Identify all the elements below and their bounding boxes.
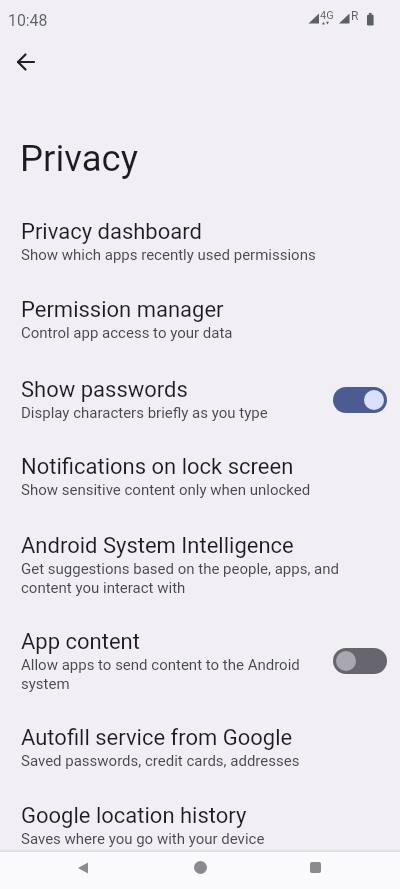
staticText: Google location history <box>21 803 247 829</box>
staticText: Privacy dashboard <box>21 219 202 245</box>
staticText: R <box>351 9 359 23</box>
button[interactable] <box>0 852 134 889</box>
staticText: Permission manager <box>21 297 224 323</box>
staticText: Autofill service from Google <box>21 725 293 751</box>
staticText: Saved passwords, credit cards, addresses <box>21 752 377 770</box>
button[interactable]: Autofill service from Google <box>0 725 400 770</box>
staticText: App content <box>21 629 140 655</box>
staticText: 10:48 <box>8 11 48 30</box>
staticText: Control app access to your data <box>21 324 377 342</box>
staticText: Notifications on lock screen <box>21 454 294 480</box>
button[interactable] <box>333 387 387 413</box>
button[interactable]: Android System Intelligence <box>0 533 400 596</box>
button[interactable]: Permission manager <box>0 297 400 342</box>
button[interactable]: Notifications on lock screen <box>0 454 400 499</box>
staticText: Display characters briefly as you type <box>21 404 321 422</box>
staticText: Get suggestions based on the people, app… <box>21 560 377 596</box>
button[interactable]: Privacy dashboard <box>0 219 400 264</box>
staticText: Show which apps recently used permission… <box>21 246 377 264</box>
button[interactable] <box>267 852 400 889</box>
staticText: Saves where you go with your device <box>21 830 377 848</box>
button[interactable]: App content <box>0 629 400 692</box>
staticText: 4G <box>320 9 334 22</box>
staticText: Show sensitive content only when unlocke… <box>21 481 377 499</box>
button[interactable] <box>8 44 44 80</box>
staticText: Privacy <box>20 137 138 180</box>
staticText: Android System Intelligence <box>21 533 294 559</box>
staticText: Show passwords <box>21 377 188 403</box>
button[interactable] <box>333 648 387 674</box>
button[interactable]: Show passwords <box>0 377 400 422</box>
staticText: Allow apps to send content to the Androi… <box>21 656 321 692</box>
button[interactable] <box>134 852 267 889</box>
button[interactable]: Google location history <box>0 803 400 848</box>
